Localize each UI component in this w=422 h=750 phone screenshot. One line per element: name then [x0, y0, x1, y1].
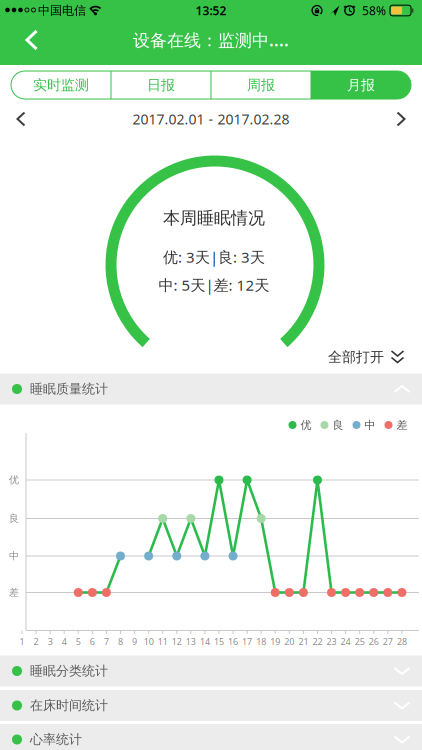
staticText: 18 — [256, 635, 266, 648]
staticText: 6 — [90, 635, 95, 648]
staticText: 8 — [118, 635, 123, 648]
staticText: 优 — [9, 474, 19, 486]
staticText: 27 — [383, 635, 393, 648]
staticText: 24 — [341, 635, 351, 648]
staticText: 中: 5天|差: 12天 — [158, 275, 269, 295]
staticText: 差 — [9, 586, 19, 599]
staticText: 13 — [186, 635, 196, 648]
button[interactable]: 在床时间统计 — [0, 690, 422, 721]
staticText: 58% — [362, 2, 386, 19]
staticText: 优 — [300, 418, 311, 432]
button[interactable]: 睡眠质量统计 — [0, 373, 422, 404]
staticText: 在床时间统计 — [30, 697, 108, 714]
staticText: 实时监测 — [33, 76, 89, 94]
staticText: 9 — [132, 635, 137, 648]
button[interactable]: 心率统计 — [0, 724, 422, 750]
staticText: 7 — [104, 635, 109, 648]
button[interactable] — [2, 22, 46, 58]
staticText: 5 — [76, 635, 81, 648]
button[interactable]: 日报 — [111, 71, 211, 99]
staticText: 心率统计 — [30, 731, 82, 748]
staticText: 2 — [34, 635, 39, 648]
staticText: 16 — [228, 635, 238, 648]
staticText: 4 — [62, 635, 67, 648]
button[interactable]: 周报 — [211, 71, 311, 99]
staticText: 20 — [284, 635, 294, 648]
staticText: 睡眠质量统计 — [30, 381, 108, 397]
staticText: 19 — [270, 635, 280, 648]
staticText: 11 — [158, 635, 168, 648]
staticText: 23 — [326, 635, 336, 648]
staticText: 28 — [397, 635, 407, 648]
staticText: 差 — [396, 418, 407, 432]
staticText: 中 — [9, 550, 19, 562]
button[interactable]: 月报 — [311, 71, 411, 99]
staticText: 中国电信 — [38, 3, 86, 18]
staticText: 2017.02.01 - 2017.02.28 — [132, 109, 289, 129]
staticText: 睡眠分类统计 — [30, 663, 108, 679]
staticText: 良 — [332, 418, 343, 432]
button[interactable]: 全部打开 — [328, 348, 404, 366]
staticText: 优: 3天|良: 3天 — [163, 247, 265, 267]
staticText: 月报 — [347, 76, 375, 94]
staticText: 良 — [9, 512, 19, 525]
button[interactable]: 实时监测 — [11, 71, 111, 99]
staticText: 日报 — [147, 76, 175, 94]
staticText: 中 — [364, 418, 375, 432]
staticText: 12 — [172, 635, 182, 648]
button[interactable] — [3, 104, 39, 134]
staticText: 13:52 — [195, 2, 226, 19]
staticText: 26 — [369, 635, 379, 648]
button[interactable] — [383, 104, 419, 134]
staticText: 10 — [144, 635, 154, 648]
staticText: 21 — [298, 635, 308, 648]
staticText: 1 — [19, 635, 24, 648]
staticText: 本周睡眠情况 — [163, 207, 265, 229]
staticText: 17 — [242, 635, 252, 648]
staticText: 25 — [355, 635, 365, 648]
staticText: 全部打开 — [328, 348, 384, 366]
staticText: 周报 — [247, 76, 275, 94]
staticText: 22 — [312, 635, 322, 648]
staticText: 3 — [48, 635, 53, 648]
button[interactable]: 睡眠分类统计 — [0, 655, 422, 686]
staticText: 14 — [200, 635, 210, 648]
staticText: 15 — [214, 635, 224, 648]
staticText: 设备在线：监测中.... — [133, 28, 289, 52]
